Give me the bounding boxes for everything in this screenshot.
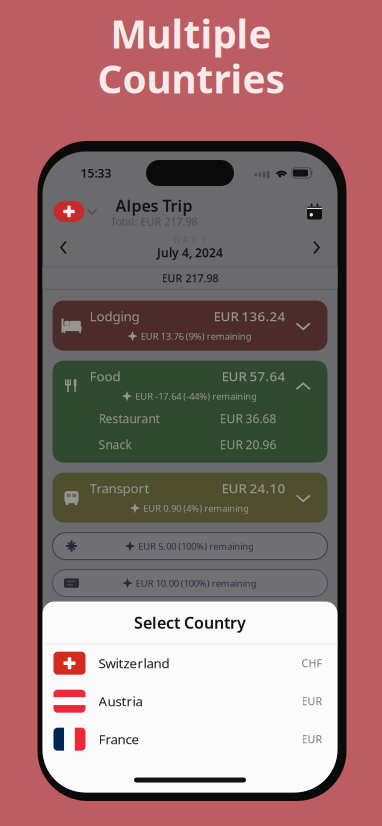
staticText: Restaurant (98, 411, 159, 426)
staticText: EUR 36.68 (219, 411, 276, 426)
staticText: EUR 10.00 (100%) remaining (136, 577, 257, 589)
staticText: 15:33 (80, 165, 111, 181)
staticText: Austria (98, 692, 142, 710)
staticText: Alpes Trip (115, 195, 192, 216)
staticText: Transport (89, 479, 149, 497)
staticText: Switzerland (98, 654, 169, 672)
staticText: EUR 24.10 (221, 479, 285, 497)
button[interactable]: Next day (306, 234, 326, 260)
button[interactable]: France (42, 720, 337, 758)
staticText: EUR 20.96 (219, 437, 276, 452)
staticText: France (98, 730, 139, 748)
button[interactable]: EUR 10.00 (100%) remaining (52, 570, 327, 597)
staticText: EUR 0.90 (4%) remaining (143, 502, 249, 514)
staticText: Snack (98, 437, 131, 452)
staticText: Select Country (134, 612, 246, 633)
staticText: EUR 57.64 (221, 367, 285, 385)
button[interactable]: Austria (42, 682, 337, 720)
button[interactable]: Calendar (306, 203, 322, 219)
button[interactable]: Change country (53, 201, 97, 222)
staticText: EUR (301, 732, 322, 746)
staticText: D A Y 1 (173, 233, 206, 246)
button[interactable]: Previous day (53, 234, 73, 260)
staticText: Total: EUR 217.98 (110, 214, 197, 229)
staticText: CHF (301, 656, 322, 670)
staticText: Countries (97, 53, 284, 104)
staticText: Food (89, 367, 120, 385)
button[interactable]: Switzerland (42, 644, 337, 682)
staticText: EUR 13.76 (9%) remaining (141, 330, 252, 342)
button[interactable]: Transport (52, 473, 327, 523)
button[interactable]: Lodging (52, 301, 327, 351)
staticText: EUR 5.00 (100%) remaining (138, 540, 254, 552)
staticText: Multiple (110, 8, 271, 59)
staticText: EUR 217.98 (161, 271, 218, 285)
staticText: EUR 136.24 (213, 307, 285, 325)
staticText: Lodging (89, 307, 139, 325)
staticText: EUR -17.64 (-44%) remaining (135, 390, 257, 402)
staticText: EUR (301, 694, 322, 708)
button[interactable]: EUR 5.00 (100%) remaining (52, 533, 327, 560)
staticText: July 4, 2024 (157, 244, 223, 260)
button[interactable]: Food (52, 361, 327, 463)
